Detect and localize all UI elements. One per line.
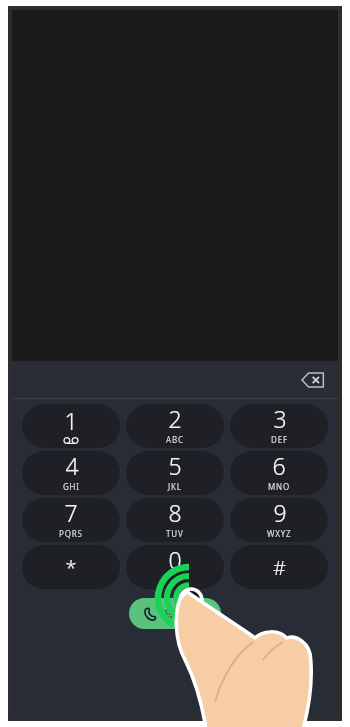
button[interactable]: 5 — [126, 451, 224, 495]
staticText: 4 — [65, 451, 79, 481]
staticText: 8 — [168, 498, 182, 528]
staticText: 9 — [273, 498, 287, 528]
staticText: 音声通話 — [163, 607, 207, 621]
staticText: MNO — [268, 481, 290, 492]
staticText: GHI — [63, 481, 80, 492]
button[interactable]: 9 — [230, 498, 328, 542]
staticText: 5 — [168, 451, 182, 481]
staticText: 0 — [168, 545, 182, 575]
staticText: + — [172, 575, 178, 586]
staticText: JKL — [168, 481, 182, 492]
staticText: 7 — [64, 498, 78, 528]
staticText: WXYZ — [267, 528, 292, 539]
button[interactable]: 0 — [126, 545, 224, 589]
staticText: 1 — [64, 405, 78, 436]
staticText: 3 — [273, 404, 287, 434]
button[interactable]: 1 — [22, 404, 120, 448]
button[interactable]: Backspace — [296, 363, 330, 397]
button[interactable]: * — [22, 545, 120, 589]
staticText: 6 — [272, 451, 286, 481]
button[interactable]: 音声通話 — [129, 598, 221, 629]
staticText: ABC — [166, 434, 184, 445]
button[interactable]: 7 — [22, 498, 120, 542]
staticText: TUV — [166, 528, 184, 539]
button[interactable]: 2 — [126, 404, 224, 448]
staticText: # — [273, 554, 286, 581]
staticText: * — [65, 554, 77, 581]
button[interactable]: 8 — [126, 498, 224, 542]
staticText: 2 — [168, 404, 182, 434]
staticText: DEF — [271, 434, 288, 445]
button[interactable]: # — [230, 545, 328, 589]
button[interactable]: 4 — [22, 451, 120, 495]
button[interactable]: 6 — [230, 451, 328, 495]
button[interactable]: 3 — [230, 404, 328, 448]
staticText: PQRS — [59, 528, 83, 539]
